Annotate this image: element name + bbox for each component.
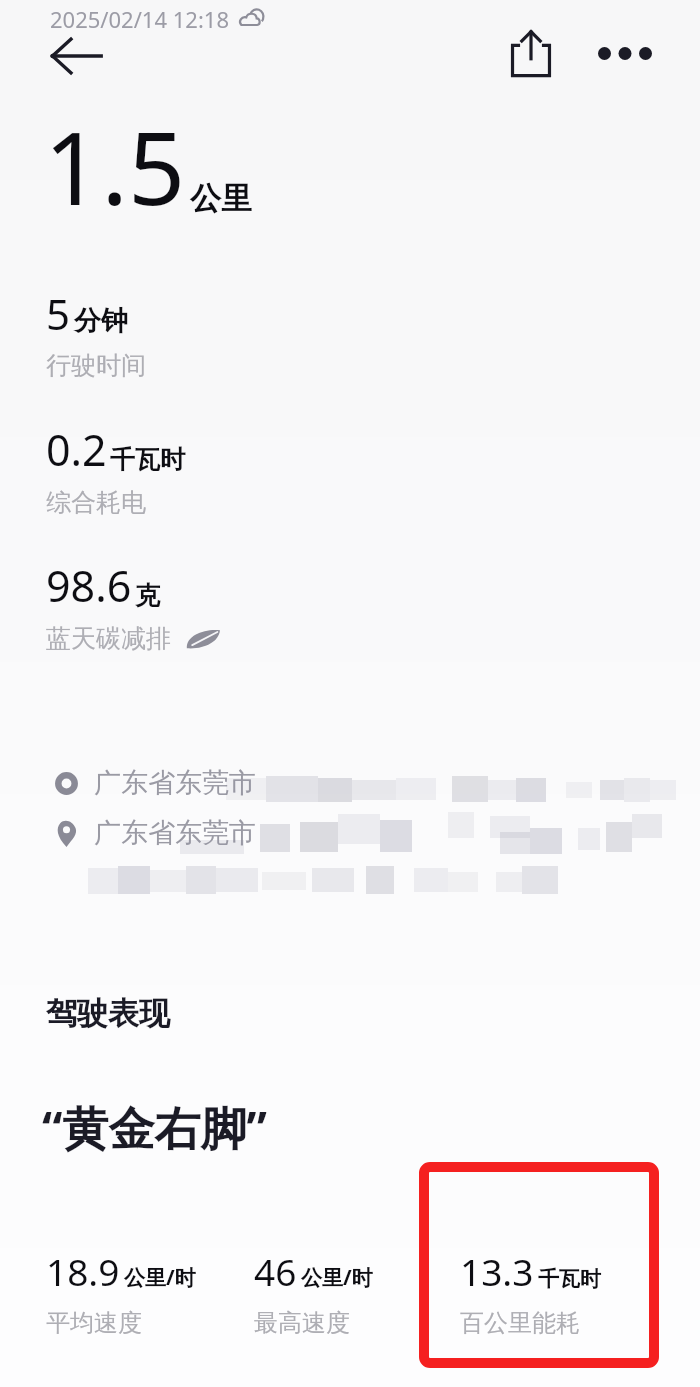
staticText: 5: [46, 285, 71, 342]
button[interactable]: Share: [494, 16, 568, 90]
staticText: “黄金右脚”: [42, 1096, 267, 1159]
staticText: 平均速度: [46, 1308, 142, 1338]
staticText: 13.3: [460, 1246, 534, 1296]
staticText: 46: [254, 1246, 297, 1296]
staticText: 公里: [190, 179, 252, 218]
staticText: 0.2: [46, 420, 107, 479]
button[interactable]: Back: [32, 24, 120, 88]
staticText: 2025/02/14 12:18: [50, 4, 229, 34]
staticText: 1.5: [44, 98, 186, 234]
staticText: 最高速度: [254, 1308, 350, 1338]
staticText: 18.9: [46, 1246, 120, 1296]
staticText: 千瓦时: [110, 444, 185, 475]
staticText: 百公里能耗: [460, 1308, 580, 1338]
staticText: 98.6: [46, 556, 132, 615]
staticText: 广东省东莞市: [94, 766, 256, 800]
staticText: 行驶时间: [46, 350, 146, 381]
staticText: 千瓦时: [538, 1266, 601, 1292]
staticText: 分钟: [74, 304, 128, 338]
button[interactable]: More options: [588, 16, 662, 90]
staticText: 驾驶表现: [46, 994, 170, 1033]
staticText: 广东省东莞市: [94, 816, 256, 850]
staticText: 蓝天碳减排: [46, 623, 171, 654]
staticText: 综合耗电: [46, 487, 146, 518]
staticText: 公里/时: [124, 1263, 196, 1292]
staticText: 公里/时: [301, 1263, 373, 1292]
staticText: 克: [135, 580, 160, 611]
